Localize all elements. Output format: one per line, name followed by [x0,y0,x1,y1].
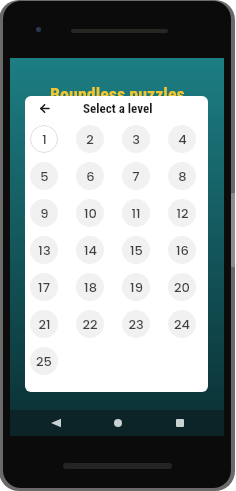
button[interactable]: 24 [168,310,196,338]
staticText: 1 [42,130,47,148]
staticText: 9 [40,204,49,222]
staticText: 22 [82,315,98,333]
button[interactable]: 19 [122,273,150,301]
button[interactable]: 5 [30,162,58,190]
staticText: 12 [176,204,189,222]
button[interactable]: 10 [76,199,104,227]
button[interactable]: Recent apps [168,410,192,436]
button[interactable]: 17 [30,273,58,301]
staticText: 5 [40,167,49,185]
button[interactable]: 4 [168,125,196,153]
button[interactable]: 12 [168,199,196,227]
button[interactable]: 18 [76,273,104,301]
staticText: 14 [84,241,97,259]
button[interactable]: 9 [30,199,58,227]
button[interactable]: 25 [30,347,58,375]
button[interactable]: 3 [122,125,150,153]
button[interactable]: 15 [122,236,150,264]
button[interactable]: 8 [168,162,196,190]
staticText: 21 [38,315,51,333]
staticText: 8 [178,167,187,185]
staticText: 7 [132,167,140,185]
button[interactable]: 13 [30,236,58,264]
staticText: 15 [130,241,143,259]
button[interactable]: 2 [76,125,104,153]
staticText: 18 [84,278,97,296]
button[interactable]: 20 [168,273,196,301]
button[interactable]: 14 [76,236,104,264]
staticText: 20 [174,278,190,296]
staticText: 17 [38,278,50,296]
staticText: 2 [86,130,94,148]
staticText: 25 [36,352,52,370]
button[interactable]: 11 [122,199,150,227]
button[interactable]: 16 [168,236,196,264]
button[interactable]: Back [44,410,68,436]
staticText: Select a level [83,101,153,116]
staticText: 23 [128,315,144,333]
button[interactable]: 22 [76,310,104,338]
button[interactable]: Back [34,98,54,118]
button[interactable]: 1 [30,125,58,153]
staticText: 24 [174,315,190,333]
button[interactable]: 7 [122,162,150,190]
button[interactable]: Home [106,410,130,436]
staticText: 3 [132,130,140,148]
staticText: 19 [130,278,143,296]
staticText: 13 [38,241,51,259]
staticText: 4 [178,130,187,148]
staticText: 6 [86,167,95,185]
button[interactable]: 21 [30,310,58,338]
staticText: Boundless puzzles [50,84,185,105]
button[interactable]: 6 [76,162,104,190]
staticText: 10 [84,204,97,222]
staticText: 16 [176,241,189,259]
button[interactable]: 23 [122,310,150,338]
staticText: 11 [131,204,141,222]
